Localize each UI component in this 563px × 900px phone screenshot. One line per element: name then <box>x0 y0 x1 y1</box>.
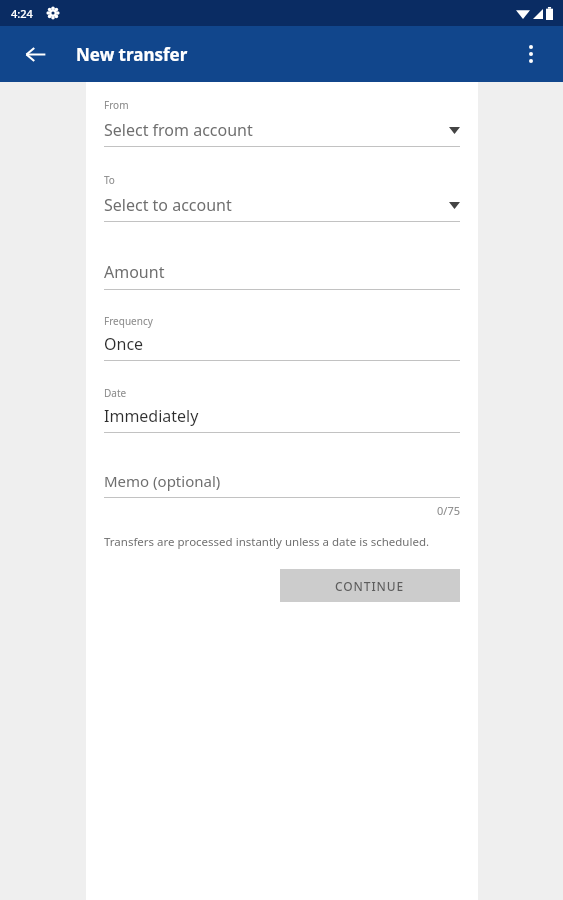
button[interactable]: Date <box>104 386 460 433</box>
staticText: Select to account <box>104 194 449 216</box>
staticText: From <box>104 98 129 112</box>
button[interactable]: Back <box>11 30 59 78</box>
button[interactable]: Amount <box>104 261 460 290</box>
button[interactable]: More options <box>509 32 553 76</box>
button[interactable]: CONTINUE <box>280 569 460 602</box>
button[interactable]: Frequency <box>104 314 460 361</box>
button[interactable]: To <box>104 173 460 222</box>
button[interactable]: From <box>104 98 460 147</box>
staticText: Amount <box>104 261 165 283</box>
staticText: Once <box>104 333 144 355</box>
staticText: Memo (optional) <box>104 471 221 491</box>
staticText: Transfers are processed instantly unless… <box>104 534 430 550</box>
staticText: To <box>104 173 115 187</box>
staticText: 0/75 <box>104 503 460 518</box>
staticText: New transfer <box>76 43 188 66</box>
staticText: Date <box>104 386 127 400</box>
staticText: Frequency <box>104 314 153 328</box>
staticText: CONTINUE <box>335 578 405 594</box>
staticText: Select from account <box>104 119 449 141</box>
staticText: 4:24 <box>11 6 33 21</box>
button[interactable]: Memo (optional) <box>104 471 460 498</box>
staticText: Immediately <box>104 405 199 427</box>
